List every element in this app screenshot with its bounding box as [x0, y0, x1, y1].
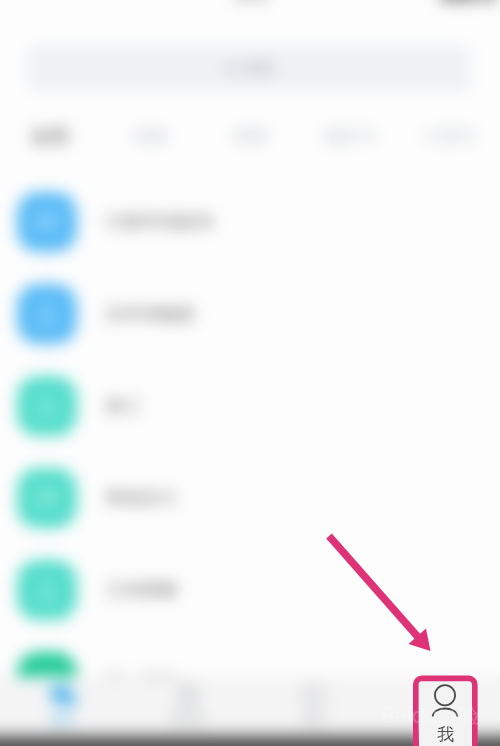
button[interactable]: 微信: [0, 686, 125, 729]
staticText: 全部: [30, 124, 70, 149]
button[interactable]: 家人群聊: [0, 636, 500, 728]
staticText: ●●● ▮▮: [440, 0, 496, 2]
button[interactable]: 群聊: [200, 126, 300, 147]
button[interactable]: 订阅号: [400, 126, 500, 147]
staticText: 工作群聊: [105, 579, 177, 602]
staticText: 李四五六: [105, 487, 177, 510]
button[interactable]: 文件传输助: [0, 268, 500, 360]
button[interactable]: 订阅号消息列: [0, 176, 500, 268]
staticText: 微信: [51, 711, 75, 726]
staticText: 文件传输助: [105, 303, 195, 326]
staticText: 通讯录: [170, 711, 206, 726]
button[interactable]: 工作群聊: [0, 544, 500, 636]
button[interactable]: 搜索: [28, 46, 470, 91]
staticText: 我: [432, 711, 444, 726]
staticText: 张三: [105, 395, 141, 418]
button[interactable]: 发现: [250, 686, 375, 729]
button[interactable]: 全部: [0, 124, 100, 149]
button[interactable]: 我: [375, 686, 500, 729]
staticText: 订阅号消息列: [105, 211, 213, 234]
staticText: Baidu经验: [381, 701, 480, 730]
button[interactable]: 通讯录: [125, 686, 250, 729]
button[interactable]: 服务号: [300, 126, 400, 147]
button[interactable]: 李四五六: [0, 452, 500, 544]
button[interactable]: 单聊: [100, 126, 200, 147]
button[interactable]: 张三: [0, 360, 500, 452]
staticText: 发现: [301, 711, 325, 726]
staticText: 我: [437, 724, 454, 745]
button[interactable]: Me tab: [419, 682, 472, 746]
